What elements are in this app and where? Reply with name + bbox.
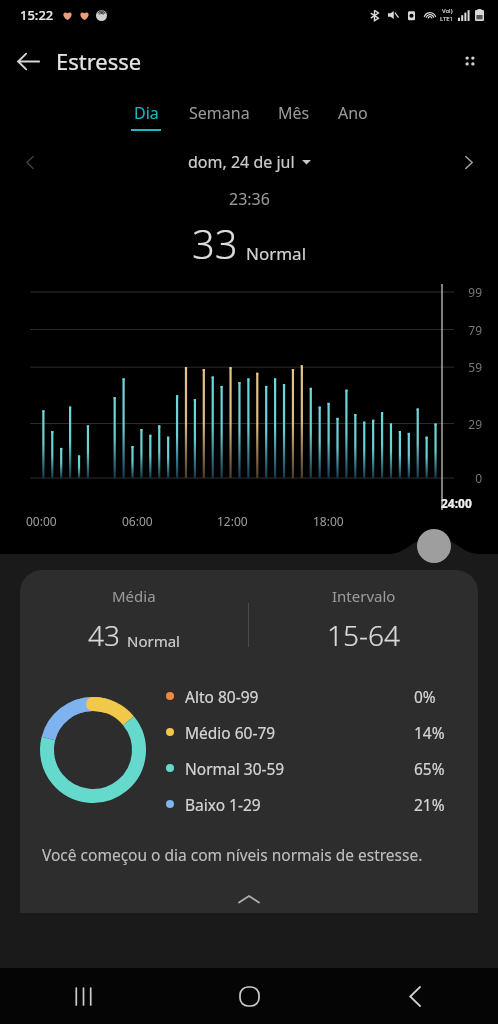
staticText: 15-64	[327, 616, 400, 654]
staticText: 0%	[414, 686, 462, 707]
button[interactable]: Recents	[0, 968, 166, 1024]
button[interactable]: Dia	[117, 98, 175, 135]
staticText: Normal	[127, 631, 180, 651]
staticText: 14%	[414, 722, 462, 743]
button[interactable]: More options	[442, 33, 498, 89]
staticText: Vol)	[442, 7, 453, 15]
staticText: 33	[192, 216, 238, 270]
staticText: 00:00	[26, 513, 57, 529]
button[interactable]: Baixo 1-29	[166, 786, 462, 822]
button[interactable]: Normal 30-59	[166, 750, 462, 786]
staticText: 21%	[414, 794, 462, 815]
staticText: Dia	[134, 102, 159, 124]
button[interactable]: Mês	[264, 98, 324, 135]
button[interactable]: Média	[20, 570, 478, 913]
button[interactable]: Ano	[324, 98, 382, 135]
staticText: 06:00	[122, 513, 153, 529]
staticText: Média	[112, 586, 156, 606]
button[interactable]: Home	[166, 968, 332, 1024]
staticText: 24:00	[441, 495, 472, 511]
staticText: Estresse	[56, 46, 142, 76]
staticText: Intervalo	[332, 586, 396, 606]
button[interactable]: Médio 60-79	[166, 714, 462, 750]
staticText: Ano	[338, 102, 368, 124]
staticText: Baixo 1-29	[185, 794, 261, 815]
staticText: Médio 60-79	[185, 722, 276, 743]
button[interactable]: Alto 80-99	[166, 678, 462, 714]
staticText: Semana	[189, 102, 250, 124]
button[interactable]: dom, 24 de jul	[178, 147, 321, 177]
staticText: 65%	[414, 758, 462, 779]
button[interactable]: Next day	[446, 140, 490, 184]
staticText: dom, 24 de jul	[188, 151, 295, 173]
staticText: LTE1	[440, 15, 454, 23]
staticText: 59	[458, 359, 482, 375]
staticText: Mês	[278, 102, 310, 124]
staticText: 29	[458, 416, 482, 432]
staticText: 99	[458, 284, 482, 300]
staticText: 0	[458, 470, 482, 486]
staticText: 79	[458, 322, 482, 338]
staticText: 12:00	[217, 513, 248, 529]
button[interactable]: Expand	[20, 885, 478, 913]
button[interactable]: Semana	[175, 98, 264, 135]
staticText: Você começou o dia com níveis normais de…	[42, 844, 423, 865]
staticText: Normal 30-59	[185, 758, 285, 779]
button[interactable]: Back	[332, 968, 498, 1024]
staticText: 43	[88, 616, 120, 654]
staticText: 23:36	[229, 188, 270, 210]
staticText: 18:00	[313, 513, 344, 529]
staticText: Normal	[246, 242, 307, 265]
staticText: 15:22	[20, 6, 54, 24]
staticText: Alto 80-99	[185, 686, 259, 707]
button[interactable]: Back	[0, 33, 56, 89]
button[interactable]: Previous day	[8, 140, 52, 184]
